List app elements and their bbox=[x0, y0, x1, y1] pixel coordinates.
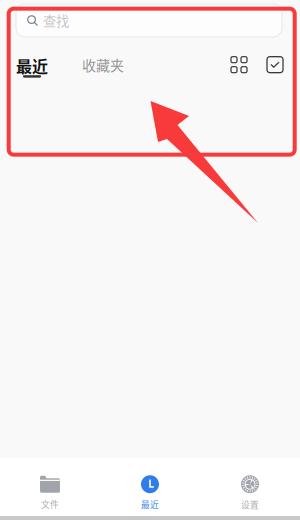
staticText: 文件 bbox=[41, 498, 59, 510]
button[interactable]: 查找 bbox=[16, 4, 282, 37]
staticText: 最近 bbox=[141, 498, 159, 511]
button[interactable]: 最近 bbox=[16, 54, 48, 80]
button[interactable]: Grid view bbox=[231, 57, 247, 80]
button[interactable]: 收藏夹 bbox=[82, 54, 124, 80]
button[interactable]: 最近 bbox=[100, 458, 200, 516]
staticText: 收藏夹 bbox=[82, 54, 124, 75]
staticText: 查找 bbox=[43, 11, 69, 30]
button[interactable]: Select bbox=[267, 57, 283, 80]
button[interactable]: 文件 bbox=[0, 458, 100, 516]
staticText: 最近 bbox=[16, 54, 48, 77]
staticText: 设置 bbox=[241, 498, 259, 511]
button[interactable]: 设置 bbox=[200, 458, 300, 516]
